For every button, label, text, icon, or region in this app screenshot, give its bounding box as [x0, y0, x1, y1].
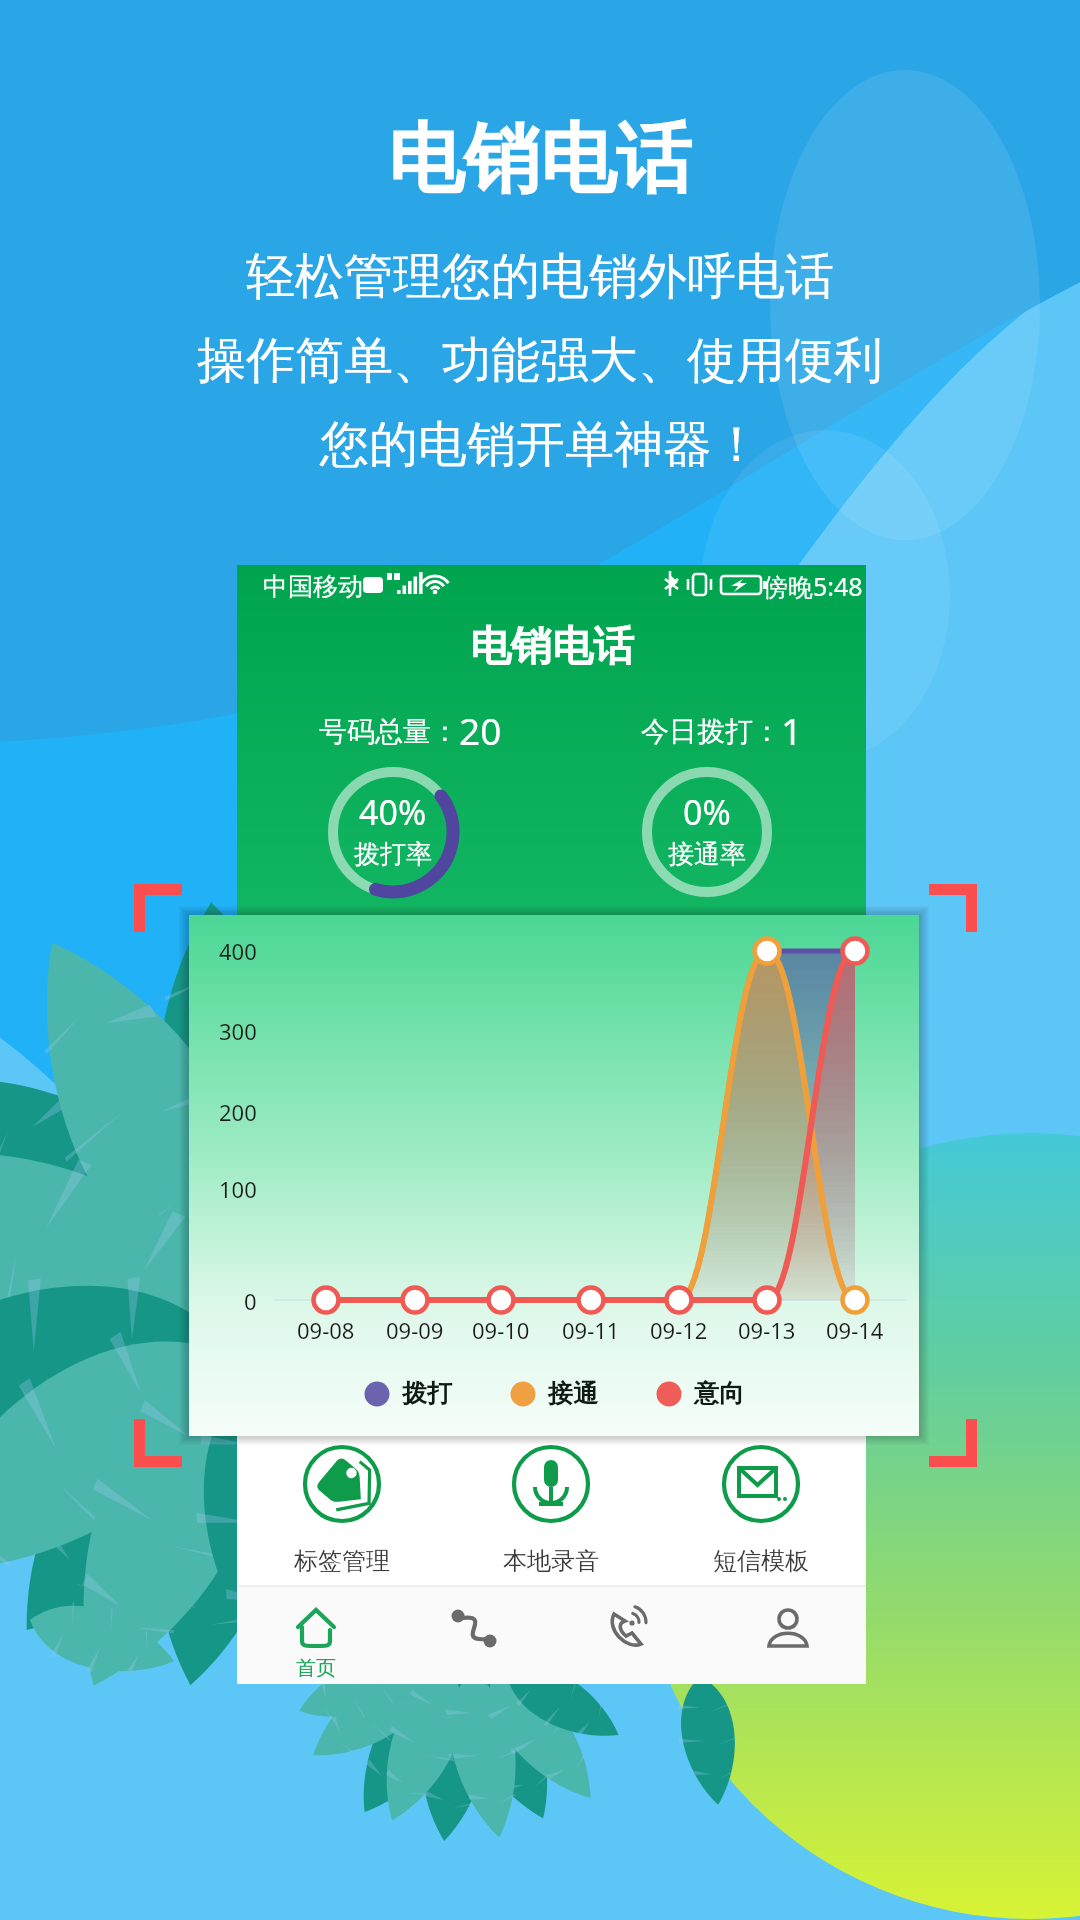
staticText: 200: [219, 1097, 257, 1127]
staticText: 0: [244, 1286, 257, 1316]
staticText: 09-13: [738, 1315, 796, 1345]
staticText: 号码总量：: [319, 714, 459, 749]
staticText: 傍晚5:48: [763, 569, 863, 603]
staticText: 09-09: [386, 1315, 444, 1345]
staticText: 意向: [694, 1378, 744, 1409]
staticText: 接通率: [668, 838, 746, 871]
staticText: 中国移动: [263, 571, 363, 602]
button[interactable]: 本地录音: [446, 1436, 656, 1576]
staticText: 今日拨打：: [641, 714, 781, 749]
staticText: 短信模板: [713, 1546, 809, 1576]
button[interactable]: 标签管理: [237, 1436, 446, 1576]
button[interactable]: 跟进: [395, 1585, 552, 1684]
staticText: 拨打率: [354, 838, 432, 871]
staticText: 09-11: [562, 1315, 620, 1345]
button[interactable]: 短信模板: [656, 1436, 866, 1576]
staticText: 20: [459, 705, 502, 749]
staticText: 电销电话: [388, 112, 692, 198]
staticText: 首页: [296, 1656, 336, 1681]
staticText: 40%: [359, 789, 427, 835]
button[interactable]: 首页: [237, 1585, 395, 1684]
staticText: 300: [219, 1016, 257, 1046]
staticText: 操作简单、功能强大、使用便利: [197, 330, 883, 392]
staticText: 轻松管理您的电销外呼电话: [246, 246, 834, 308]
button[interactable]: 通话: [552, 1585, 709, 1684]
staticText: 接通: [548, 1378, 598, 1409]
staticText: 09-12: [650, 1315, 708, 1345]
staticText: 09-08: [297, 1315, 355, 1345]
staticText: 09-14: [826, 1315, 884, 1345]
staticText: 400: [219, 936, 257, 966]
staticText: 拨打: [402, 1378, 452, 1409]
staticText: 1: [781, 705, 803, 749]
staticText: 您的电销开单神器！: [320, 414, 761, 476]
button[interactable]: 我的: [709, 1585, 866, 1684]
staticText: 标签管理: [294, 1546, 390, 1576]
staticText: 0%: [683, 789, 731, 835]
staticText: 本地录音: [503, 1546, 599, 1576]
staticText: 电销电话: [470, 621, 634, 673]
staticText: 09-10: [472, 1315, 530, 1345]
staticText: 100: [219, 1174, 257, 1204]
